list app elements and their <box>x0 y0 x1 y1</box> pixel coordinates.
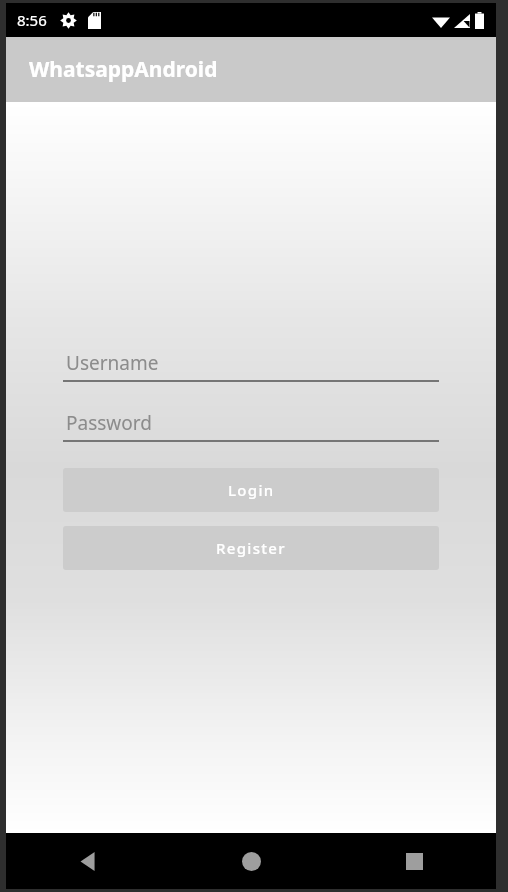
staticText: 8:56 <box>17 10 47 30</box>
staticText: Username <box>66 350 159 376</box>
button[interactable]: Login <box>63 468 439 512</box>
staticText: Password <box>66 410 152 436</box>
staticText: Register <box>216 538 286 558</box>
button[interactable]: Recent apps <box>333 833 496 889</box>
button[interactable]: Username <box>63 350 439 382</box>
staticText: WhatsappAndroid <box>29 55 218 84</box>
button[interactable]: Password <box>63 410 439 442</box>
staticText: Login <box>228 480 275 500</box>
button[interactable]: Home <box>170 833 333 889</box>
button[interactable]: Back <box>6 833 170 889</box>
button[interactable]: Register <box>63 526 439 570</box>
